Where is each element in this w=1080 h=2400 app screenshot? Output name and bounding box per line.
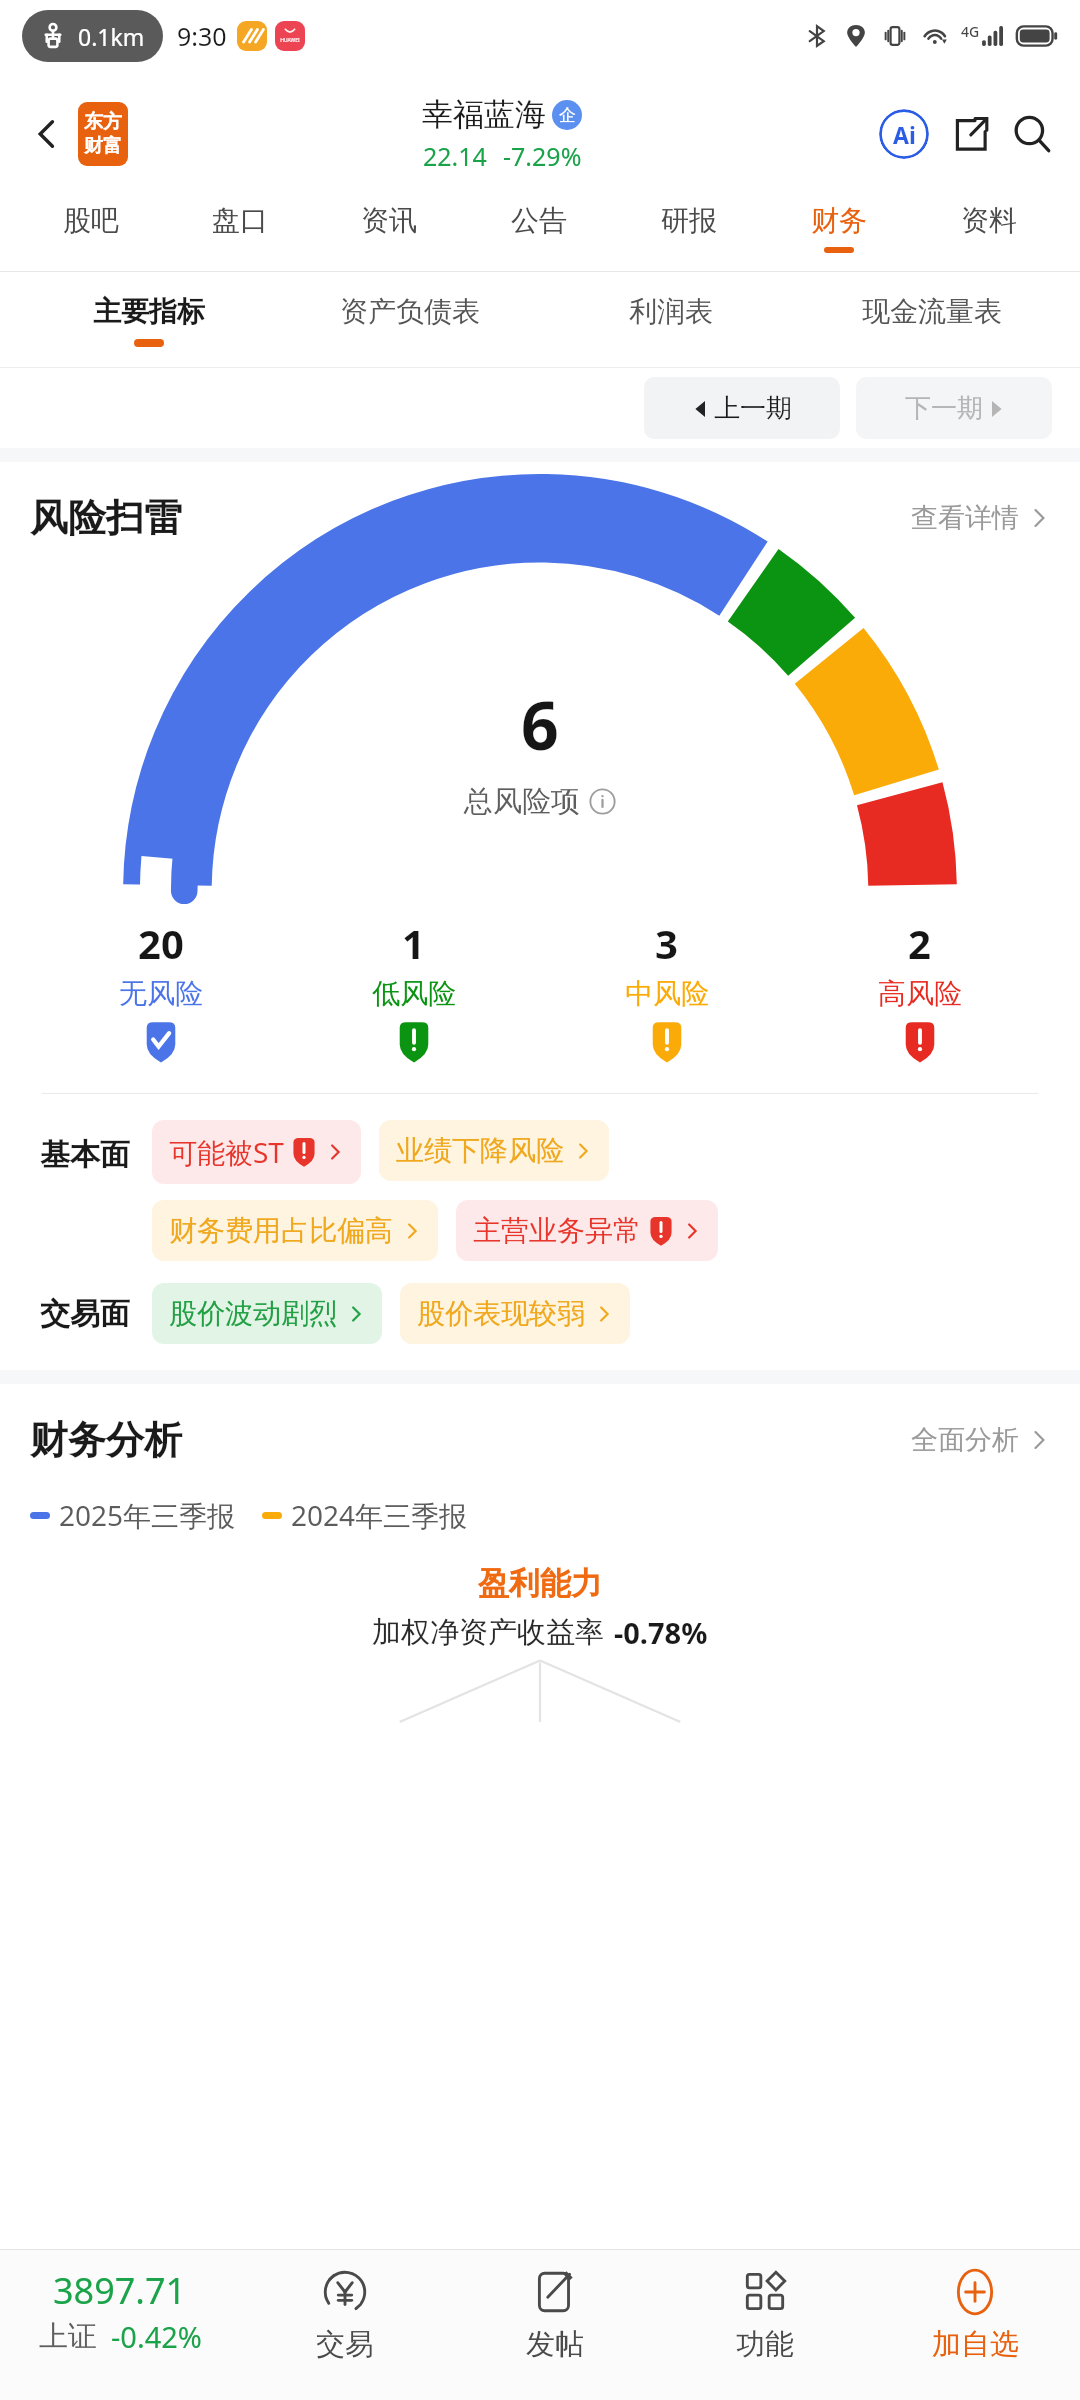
staticText: 主要指标	[93, 294, 205, 329]
staticText: 上一期	[714, 392, 792, 425]
button[interactable]: 上一期	[644, 377, 840, 439]
staticText: 低风险	[372, 976, 456, 1011]
staticText: -0.78%	[614, 1613, 708, 1652]
button[interactable]: 现金流量表	[801, 272, 1062, 368]
button[interactable]: 资产负债表	[279, 272, 540, 368]
button[interactable]: 利润表	[540, 272, 801, 368]
button[interactable]: 2024年三季报	[262, 1496, 468, 1534]
staticText: 盈利能力	[478, 1564, 602, 1603]
button[interactable]: 研报	[614, 184, 764, 272]
button[interactable]: 股价表现较弱	[400, 1283, 630, 1344]
staticText: 上证	[39, 2318, 97, 2355]
staticText: 中风险	[625, 976, 709, 1011]
button[interactable]: 主营业务异常	[456, 1200, 718, 1261]
staticText: 0.1km	[78, 21, 145, 52]
staticText: 22.14	[423, 139, 487, 173]
button[interactable]: 发帖	[450, 2250, 660, 2400]
button[interactable]: 财务费用占比偏高	[152, 1200, 438, 1261]
staticText: 可能被ST	[169, 1133, 284, 1171]
button[interactable]: 公告	[464, 184, 614, 272]
button[interactable]: 可能被ST	[152, 1120, 361, 1184]
staticText: 功能	[736, 2326, 794, 2363]
button[interactable]: Search	[1004, 106, 1060, 162]
staticText: 股价表现较弱	[417, 1296, 585, 1331]
button[interactable]: 股吧	[16, 184, 165, 272]
button[interactable]: 主要指标	[18, 272, 279, 368]
button[interactable]: 2025年三季报	[30, 1496, 236, 1534]
button[interactable]: 盘口	[165, 184, 314, 272]
staticText: 资讯	[361, 203, 417, 238]
button[interactable]: 1	[287, 916, 540, 1063]
staticText: 加自选	[932, 2326, 1019, 2363]
staticText: 公告	[511, 203, 567, 238]
button[interactable]: 交易	[240, 2250, 450, 2400]
staticText: HUAWEI	[280, 37, 300, 44]
button[interactable]: Back	[20, 107, 74, 161]
staticText: 利润表	[629, 294, 713, 329]
button[interactable]: 下一期	[856, 377, 1052, 439]
staticText: 幸福蓝海	[422, 95, 546, 134]
button[interactable]: 3	[540, 916, 793, 1063]
staticText: 3897.71	[53, 2266, 187, 2315]
staticText: 东方	[84, 110, 122, 134]
staticText: 全面分析	[911, 1423, 1019, 1457]
staticText: 资料	[961, 203, 1017, 238]
staticText: 主营业务异常	[473, 1213, 641, 1248]
staticText: 业绩下降风险	[396, 1133, 564, 1168]
staticText: Ai	[893, 119, 916, 150]
staticText: 风险扫雷	[30, 494, 182, 542]
staticText: 20	[138, 916, 184, 970]
button[interactable]: Navigation distance	[40, 10, 145, 62]
button[interactable]: 股价波动剧烈	[152, 1283, 382, 1344]
button[interactable]: 业绩下降风险	[379, 1120, 609, 1181]
staticText: 财务分析	[30, 1416, 182, 1464]
staticText: 股价波动剧烈	[169, 1296, 337, 1331]
staticText: 加权净资产收益率	[372, 1614, 604, 1651]
staticText: 财务费用占比偏高	[169, 1213, 393, 1248]
staticText: 2025年三季报	[59, 1496, 236, 1534]
staticText: 3	[655, 916, 678, 970]
staticText: 企	[559, 105, 576, 126]
button[interactable]: 3897.71	[0, 2250, 240, 2400]
staticText: 6	[521, 679, 559, 769]
button[interactable]: East Money	[78, 102, 128, 166]
staticText: 研报	[661, 203, 717, 238]
staticText: 现金流量表	[862, 294, 1002, 329]
staticText: 发帖	[526, 2326, 584, 2363]
button[interactable]: 资料	[914, 184, 1064, 272]
button[interactable]: 20	[34, 916, 287, 1063]
staticText: -7.29%	[503, 139, 582, 173]
staticText: 交易	[316, 2326, 374, 2363]
staticText: 基本面	[40, 1136, 130, 1174]
staticText: 资产负债表	[340, 294, 480, 329]
staticText: 2024年三季报	[291, 1496, 468, 1534]
staticText: 盘口	[212, 203, 268, 238]
staticText: 无风险	[119, 976, 203, 1011]
staticText: 财富	[84, 134, 122, 158]
staticText: 交易面	[40, 1295, 130, 1333]
staticText: 下一期	[905, 392, 983, 425]
button[interactable]: 2	[793, 916, 1046, 1063]
button[interactable]: AI assistant	[876, 106, 932, 162]
staticText: 财务	[811, 203, 867, 238]
button[interactable]: 财务	[764, 184, 914, 272]
button[interactable]: 财务分析	[30, 1384, 1050, 1496]
staticText: 查看详情	[911, 501, 1019, 535]
staticText: 股吧	[63, 203, 119, 238]
button[interactable]: Share	[942, 106, 998, 162]
staticText: 高风险	[878, 976, 962, 1011]
staticText: -0.42%	[111, 2317, 202, 2356]
staticText: 1	[402, 916, 425, 970]
staticText: 总风险项	[464, 783, 580, 820]
button[interactable]: 加自选	[870, 2250, 1080, 2400]
staticText: 4G	[961, 22, 980, 41]
button[interactable]: 风险扫雷	[30, 462, 1050, 574]
staticText: 9:30	[177, 19, 227, 53]
staticText: 2	[908, 916, 931, 970]
button[interactable]: 功能	[660, 2250, 870, 2400]
button[interactable]: 资讯	[314, 184, 464, 272]
